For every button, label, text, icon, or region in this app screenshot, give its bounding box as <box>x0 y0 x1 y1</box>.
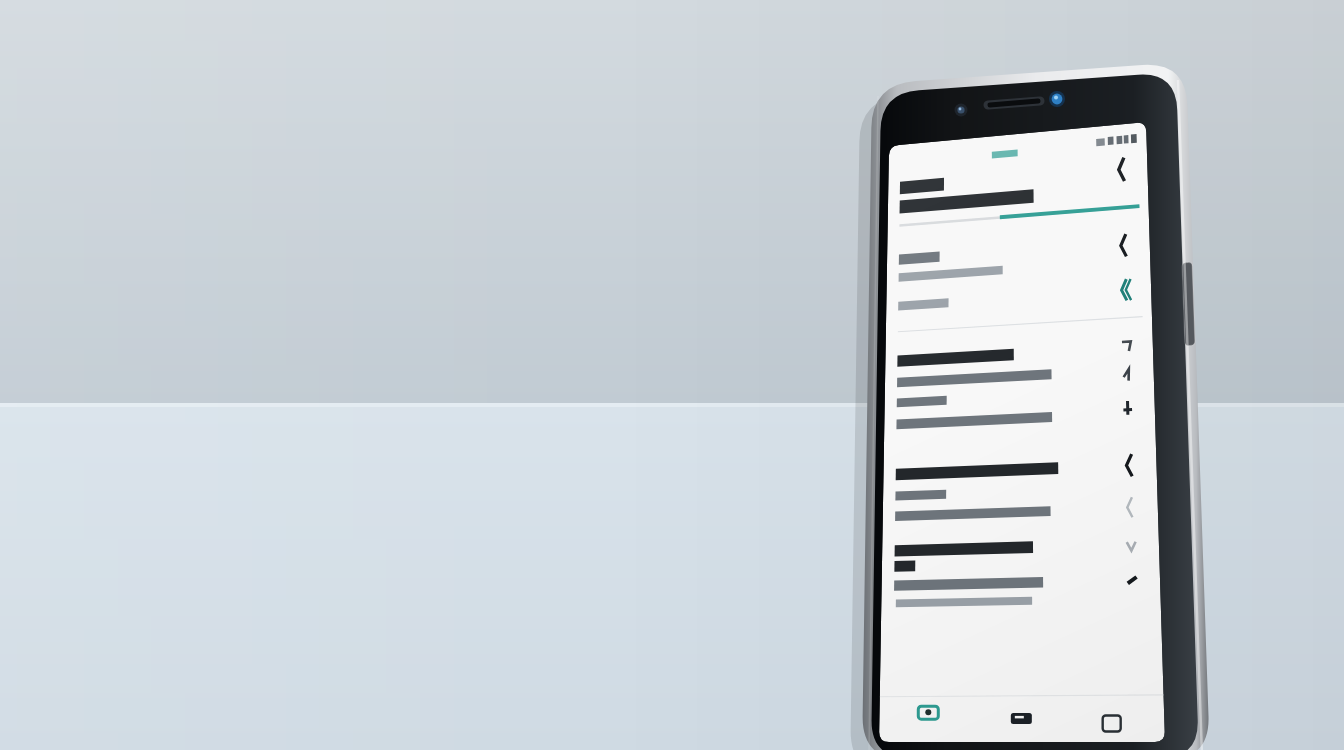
button[interactable]: Forward <box>1110 252 1155 290</box>
button[interactable]: More actions <box>1110 300 1158 396</box>
button[interactable]: Share <box>1110 205 1155 243</box>
button[interactable]: Share <box>1110 402 1160 442</box>
button[interactable]: Permissions and monitoring <box>885 312 1158 397</box>
button[interactable]: Reports and visibility <box>885 400 1160 482</box>
button[interactable]: Expand <box>1110 478 1162 520</box>
button[interactable]: More information <box>885 260 1155 305</box>
button[interactable]: Messages <box>969 694 1061 750</box>
button[interactable]: Maintenance and battery <box>885 485 1162 577</box>
button[interactable]: Summary tab <box>889 150 1150 205</box>
button[interactable]: Share <box>1110 155 1154 193</box>
button[interactable]: Edit <box>1110 520 1162 562</box>
button[interactable]: Forecast details <box>885 212 1155 260</box>
button[interactable]: Home <box>879 688 969 748</box>
button[interactable]: Recents <box>1061 700 1165 750</box>
